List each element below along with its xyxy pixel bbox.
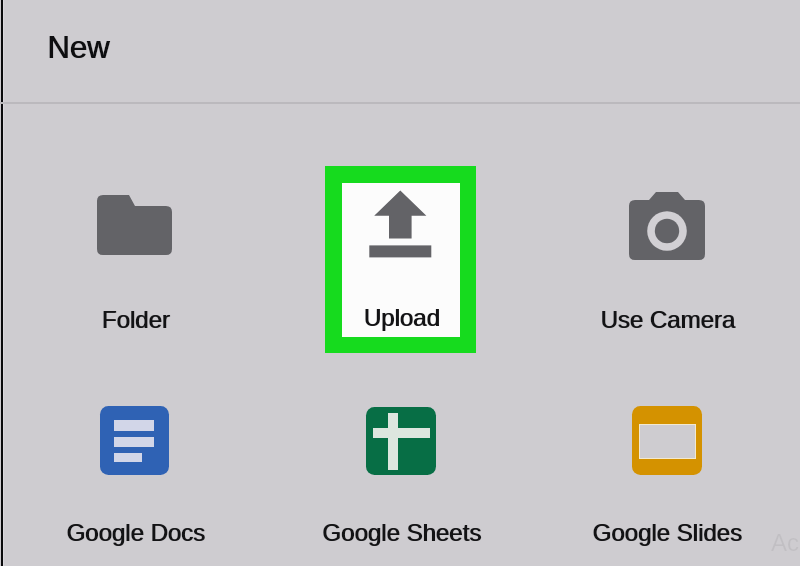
staticText: Folder	[101, 306, 170, 333]
button[interactable]: Google Sheets	[326, 398, 476, 558]
staticText: Google Docs	[67, 519, 206, 546]
staticText: Google Slides	[592, 519, 742, 546]
staticText: Upload	[363, 304, 440, 331]
staticText: Google Sheets	[322, 519, 481, 546]
staticText: Folder	[102, 306, 171, 333]
button[interactable]: Upload	[325, 166, 476, 353]
button[interactable]: Use Camera	[592, 185, 742, 345]
staticText: Google Sheets	[323, 519, 482, 546]
staticText: New	[48, 30, 111, 65]
staticText: Use Camera	[600, 306, 735, 333]
button[interactable]: New folder	[60, 185, 210, 345]
staticText: Upload	[364, 304, 441, 331]
staticText: Use Camera	[601, 306, 736, 333]
staticText: Google Docs	[66, 519, 205, 546]
button[interactable]: Google Slides	[592, 398, 742, 558]
staticText: Ac	[771, 529, 800, 556]
staticText: Google Slides	[593, 519, 743, 546]
staticText: New	[47, 30, 110, 65]
button[interactable]: Google Docs	[60, 398, 210, 558]
